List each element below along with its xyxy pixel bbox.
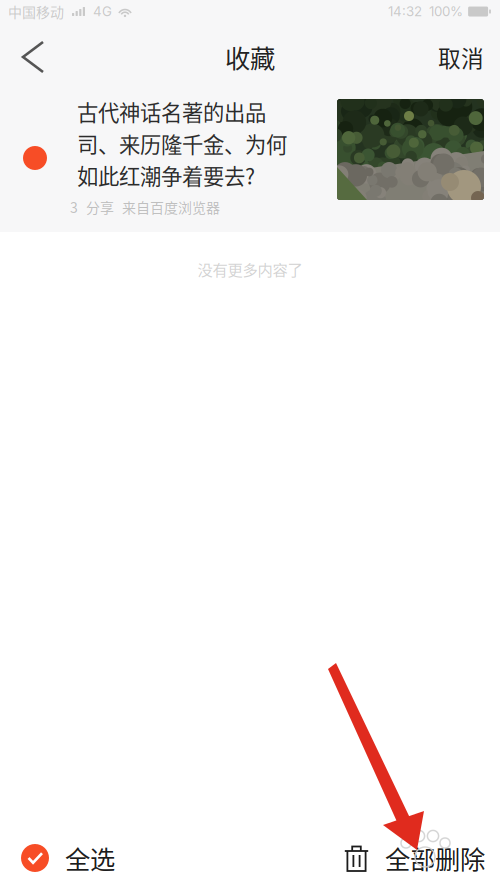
staticText: 收藏 xyxy=(225,39,275,75)
button[interactable]: 全部删除 xyxy=(344,828,500,888)
staticText: 全选 xyxy=(65,840,115,876)
button[interactable]: 古代神话名著的出品 司、来历隆千金、为何 如此红潮争着要去? xyxy=(0,86,500,232)
staticText: 来自百度浏览器 xyxy=(122,197,220,217)
staticText: 14:32 xyxy=(388,3,422,19)
staticText: 没有更多内容了 xyxy=(197,258,302,280)
button[interactable]: Back xyxy=(0,29,56,85)
staticText: 古代神话名著的出品 司、来历隆千金、为何 如此红潮争着要去? xyxy=(77,96,287,191)
staticText: 取消 xyxy=(438,41,484,73)
button[interactable]: 取消 xyxy=(438,29,500,85)
staticText: 4G xyxy=(93,3,112,19)
staticText: 全部删除 xyxy=(385,840,485,876)
staticText: 3 xyxy=(70,197,78,217)
staticText: 100% xyxy=(429,3,463,19)
button[interactable]: 全选 xyxy=(0,828,115,888)
staticText: 分享 xyxy=(86,197,114,217)
staticText: 中国移动 xyxy=(8,1,64,22)
